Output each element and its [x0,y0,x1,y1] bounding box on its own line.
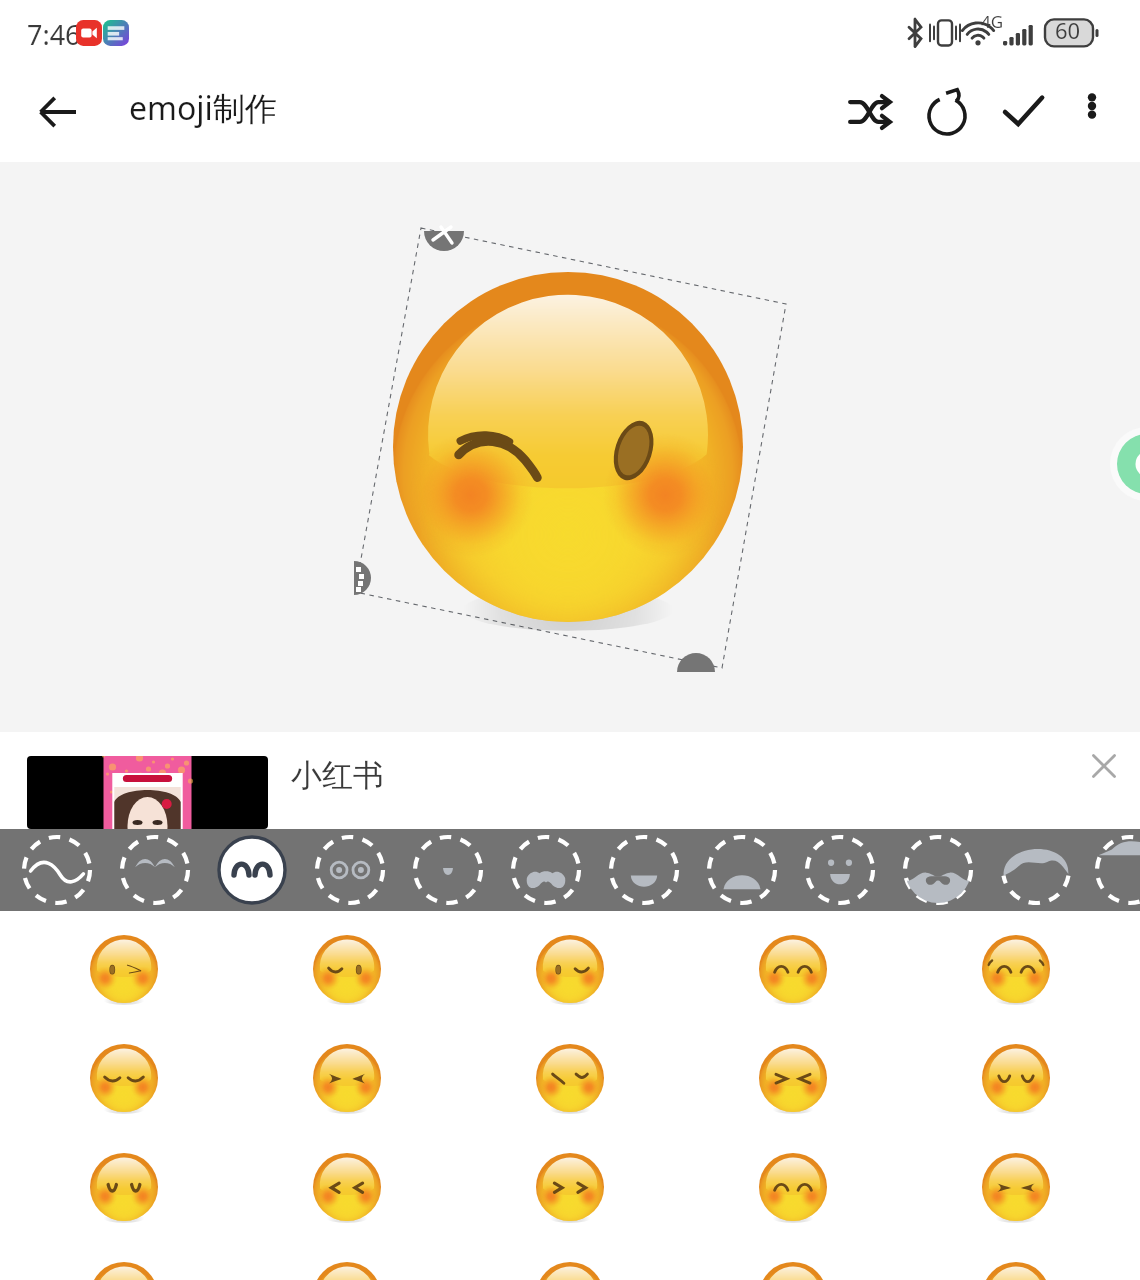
button[interactable]: Feedback [1098,422,1140,506]
button[interactable]: Shuffle [840,82,900,142]
staticText: 小红书 [291,756,384,795]
button[interactable]: Close ad [1082,744,1126,788]
staticText: emoji制作 [129,86,277,130]
staticText: 7:46 [27,16,81,53]
button[interactable]: More options [1068,82,1116,130]
button[interactable]: Back [28,82,88,142]
button[interactable]: Done [993,82,1053,142]
button[interactable]: 小红书 [0,732,1140,829]
staticText: 4G [981,10,1004,33]
staticText: 60 [1055,15,1081,45]
button[interactable]: Refresh [917,82,977,142]
